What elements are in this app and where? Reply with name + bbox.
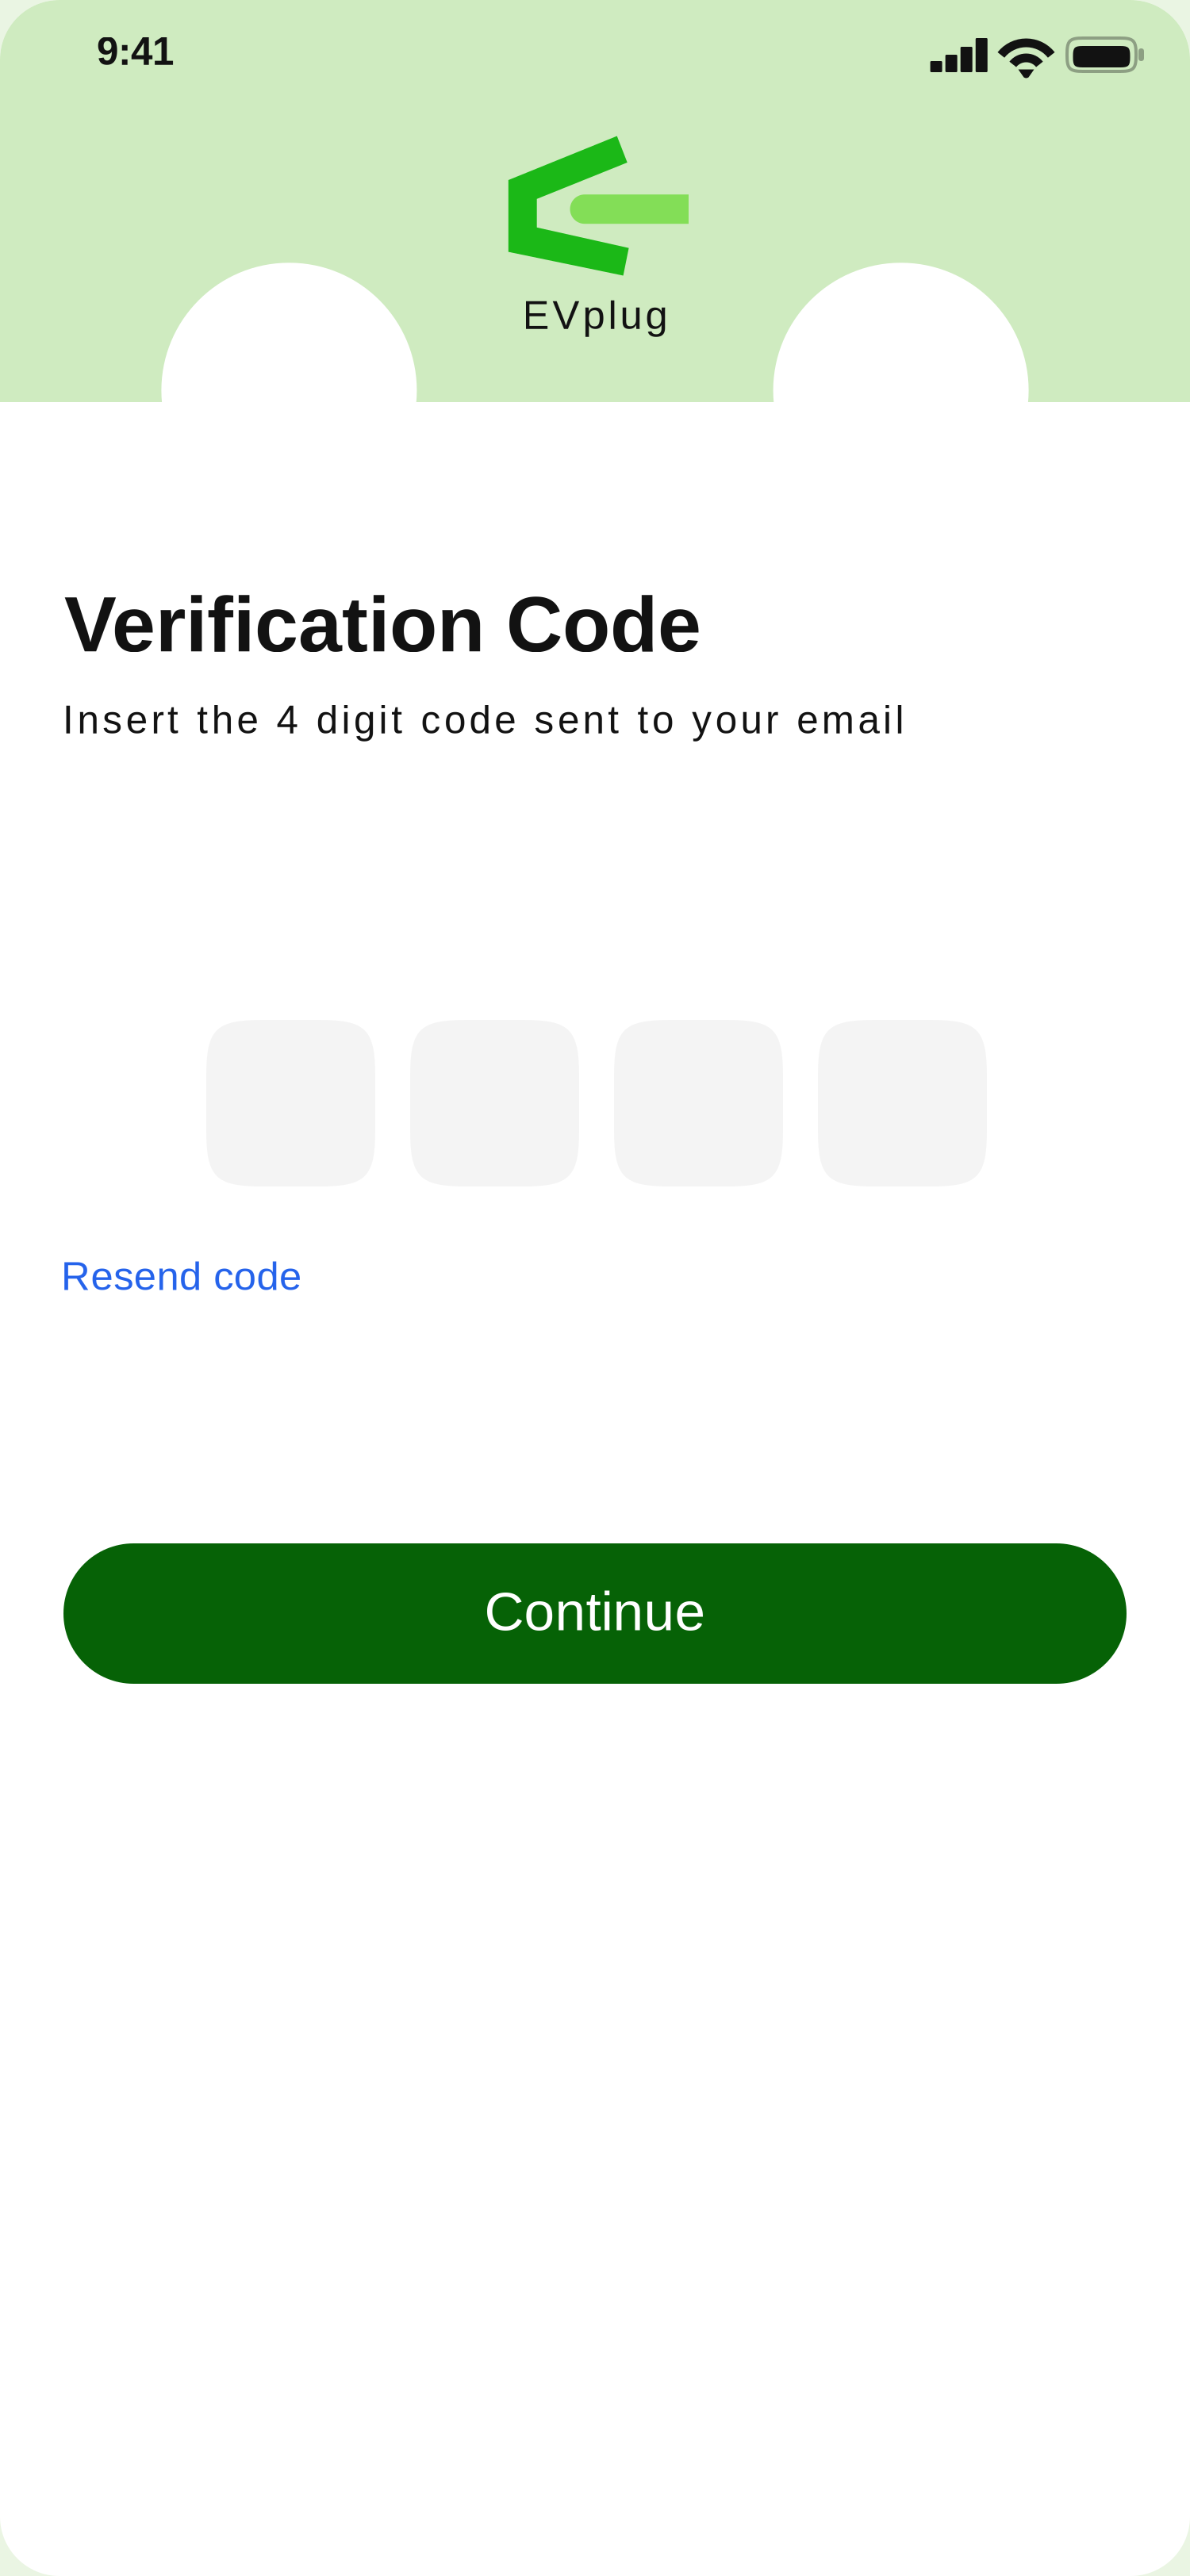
- staticText: Verification Code: [64, 581, 701, 668]
- button[interactable]: Resend code: [61, 1255, 315, 1297]
- staticText: EVplug: [522, 293, 668, 338]
- staticText: Continue: [484, 1580, 706, 1642]
- staticText: Resend code: [61, 1254, 301, 1299]
- staticText: 9:41: [97, 29, 174, 73]
- staticText: Insert the 4 digit code sent to your ema…: [63, 698, 904, 742]
- button[interactable]: Continue: [63, 1543, 1127, 1684]
